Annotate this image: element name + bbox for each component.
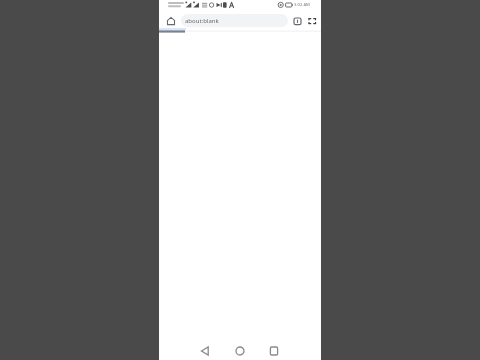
button[interactable] [162,13,178,29]
staticText: 3:02 AM [294,2,310,8]
button[interactable] [230,341,250,360]
button[interactable]: about:blank [181,14,288,27]
staticText: about:blank [185,17,219,25]
button[interactable] [290,14,304,28]
button[interactable] [305,14,319,28]
button[interactable] [195,341,215,360]
button[interactable] [264,341,284,360]
